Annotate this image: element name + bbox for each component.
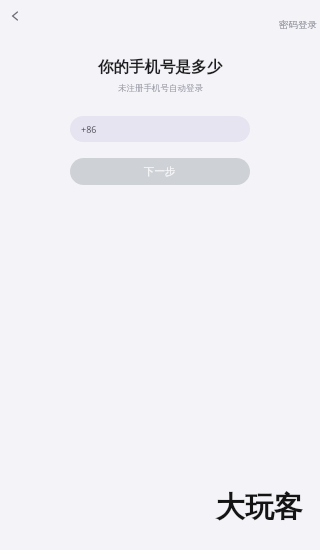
button[interactable]: Back bbox=[2, 2, 30, 30]
staticText: +86 bbox=[81, 123, 97, 135]
button[interactable]: +86 bbox=[70, 116, 250, 142]
staticText: 下一步 bbox=[144, 165, 176, 178]
staticText: 未注册手机号自动登录 bbox=[118, 83, 203, 94]
staticText: 大玩客 bbox=[216, 489, 303, 526]
staticText: 你的手机号是多少 bbox=[98, 57, 222, 77]
button[interactable]: 密码登录 bbox=[276, 18, 320, 32]
staticText: 密码登录 bbox=[279, 19, 317, 31]
button[interactable]: 下一步 bbox=[70, 158, 250, 185]
